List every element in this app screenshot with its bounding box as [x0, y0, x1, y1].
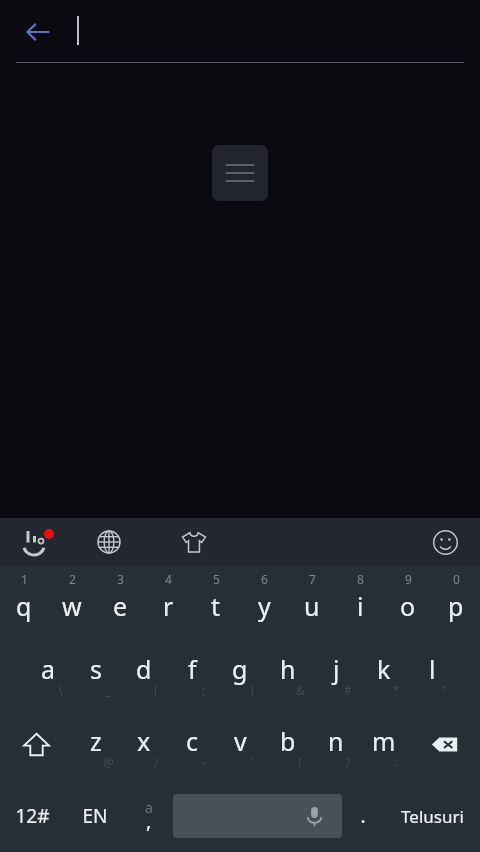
staticText: h — [280, 652, 296, 686]
staticText: ! — [298, 754, 302, 770]
staticText: & — [296, 682, 305, 698]
staticText: 12# — [15, 803, 50, 829]
button[interactable]: b — [264, 708, 312, 780]
staticText: j — [333, 652, 340, 686]
staticText: \ — [58, 682, 63, 698]
button[interactable]: g — [216, 636, 264, 708]
staticText: c — [186, 724, 199, 758]
button[interactable]: d — [120, 636, 168, 708]
button[interactable]: v — [216, 708, 264, 780]
staticText: 6 — [261, 571, 268, 587]
button[interactable]: 2 — [48, 566, 96, 636]
button[interactable]: Backspace — [408, 708, 480, 780]
staticText: EN — [82, 803, 108, 829]
staticText: ) — [250, 682, 254, 698]
staticText: _ — [105, 682, 111, 698]
button[interactable]: EN — [64, 780, 125, 852]
button[interactable]: Stickers — [171, 519, 217, 565]
button[interactable]: m — [360, 708, 408, 780]
button[interactable]: Back — [14, 8, 62, 56]
staticText: g — [232, 652, 248, 686]
button[interactable]: Shift — [0, 708, 72, 780]
button[interactable]: 9 — [384, 566, 432, 636]
button[interactable]: Loading content — [212, 145, 268, 201]
staticText: u — [304, 589, 320, 623]
staticText: ? — [345, 754, 351, 770]
staticText: Telusuri — [401, 805, 464, 828]
staticText: v — [234, 724, 247, 758]
staticText: f — [188, 652, 197, 686]
staticText: r — [163, 589, 174, 623]
staticText: 3 — [117, 571, 124, 587]
button[interactable]: Comma, voice typing settings — [125, 780, 173, 852]
staticText: b — [280, 724, 296, 758]
button[interactable]: n — [312, 708, 360, 780]
staticText: q — [16, 589, 32, 623]
staticText: p — [448, 589, 464, 623]
staticText: . — [360, 803, 366, 829]
staticText: # — [344, 682, 352, 698]
button[interactable]: f — [168, 636, 216, 708]
button[interactable]: 6 — [240, 566, 288, 636]
button[interactable]: Space — [173, 794, 342, 838]
button[interactable]: x — [120, 708, 168, 780]
staticText: / — [154, 754, 159, 770]
button[interactable]: 1 — [0, 566, 48, 636]
button[interactable]: Telusuri — [384, 780, 480, 852]
staticText: 4 — [165, 571, 172, 587]
staticText: x — [137, 724, 151, 758]
staticText: ; — [202, 682, 206, 698]
staticText: o — [400, 589, 416, 623]
button[interactable]: a — [24, 636, 72, 708]
button[interactable]: Gboard menu — [12, 519, 58, 565]
staticText: ' — [251, 754, 254, 770]
button[interactable]: 4 — [144, 566, 192, 636]
staticText: i — [357, 589, 364, 623]
staticText: 7 — [309, 571, 316, 587]
staticText: 2 — [69, 571, 76, 587]
staticText: l — [429, 652, 436, 686]
staticText: @ — [103, 754, 114, 770]
button[interactable]: l — [408, 636, 456, 708]
staticText: 9 — [405, 571, 412, 587]
button[interactable]: 0 — [432, 566, 480, 636]
staticText: n — [328, 724, 344, 758]
staticText: t — [211, 589, 221, 623]
button[interactable]: 7 — [288, 566, 336, 636]
staticText: m — [372, 724, 396, 758]
button[interactable]: Change language — [86, 519, 132, 565]
staticText: k — [377, 652, 391, 686]
button[interactable]: 8 — [336, 566, 384, 636]
staticText: 0 — [453, 571, 460, 587]
button[interactable]: z — [72, 708, 120, 780]
button[interactable]: . — [342, 780, 384, 852]
staticText: 5 — [213, 571, 220, 587]
staticText: " — [442, 682, 447, 698]
staticText: - — [202, 754, 206, 770]
staticText: a — [41, 652, 56, 686]
staticText: , — [146, 807, 152, 834]
staticText: 8 — [357, 571, 364, 587]
staticText: ( — [154, 682, 158, 698]
staticText: * — [393, 682, 400, 698]
staticText: a — [145, 798, 153, 817]
button[interactable]: k — [360, 636, 408, 708]
staticText: s — [90, 652, 102, 686]
staticText: 1 — [21, 571, 28, 587]
button[interactable]: 12# — [0, 780, 64, 852]
button[interactable]: 3 — [96, 566, 144, 636]
button[interactable]: j — [312, 636, 360, 708]
staticText: d — [136, 652, 152, 686]
button[interactable]: h — [264, 636, 312, 708]
button[interactable]: c — [168, 708, 216, 780]
staticText: y — [258, 589, 271, 623]
button[interactable]: s — [72, 636, 120, 708]
staticText: w — [62, 589, 82, 623]
staticText: z — [90, 724, 102, 758]
staticText: e — [113, 589, 128, 623]
staticText: : — [394, 754, 398, 770]
button[interactable]: 5 — [192, 566, 240, 636]
button[interactable]: Emoji — [422, 519, 468, 565]
